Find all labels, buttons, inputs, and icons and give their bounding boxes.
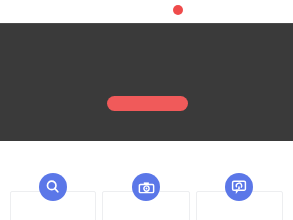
button[interactable] [102, 191, 190, 220]
button[interactable] [196, 191, 283, 220]
button[interactable]: Help [225, 173, 253, 201]
button[interactable] [0, 23, 293, 141]
other: Recording indicator [173, 5, 183, 15]
button[interactable]: Search [39, 173, 67, 201]
button[interactable] [107, 96, 188, 111]
button[interactable] [10, 191, 96, 220]
button[interactable]: Camera [132, 173, 160, 201]
